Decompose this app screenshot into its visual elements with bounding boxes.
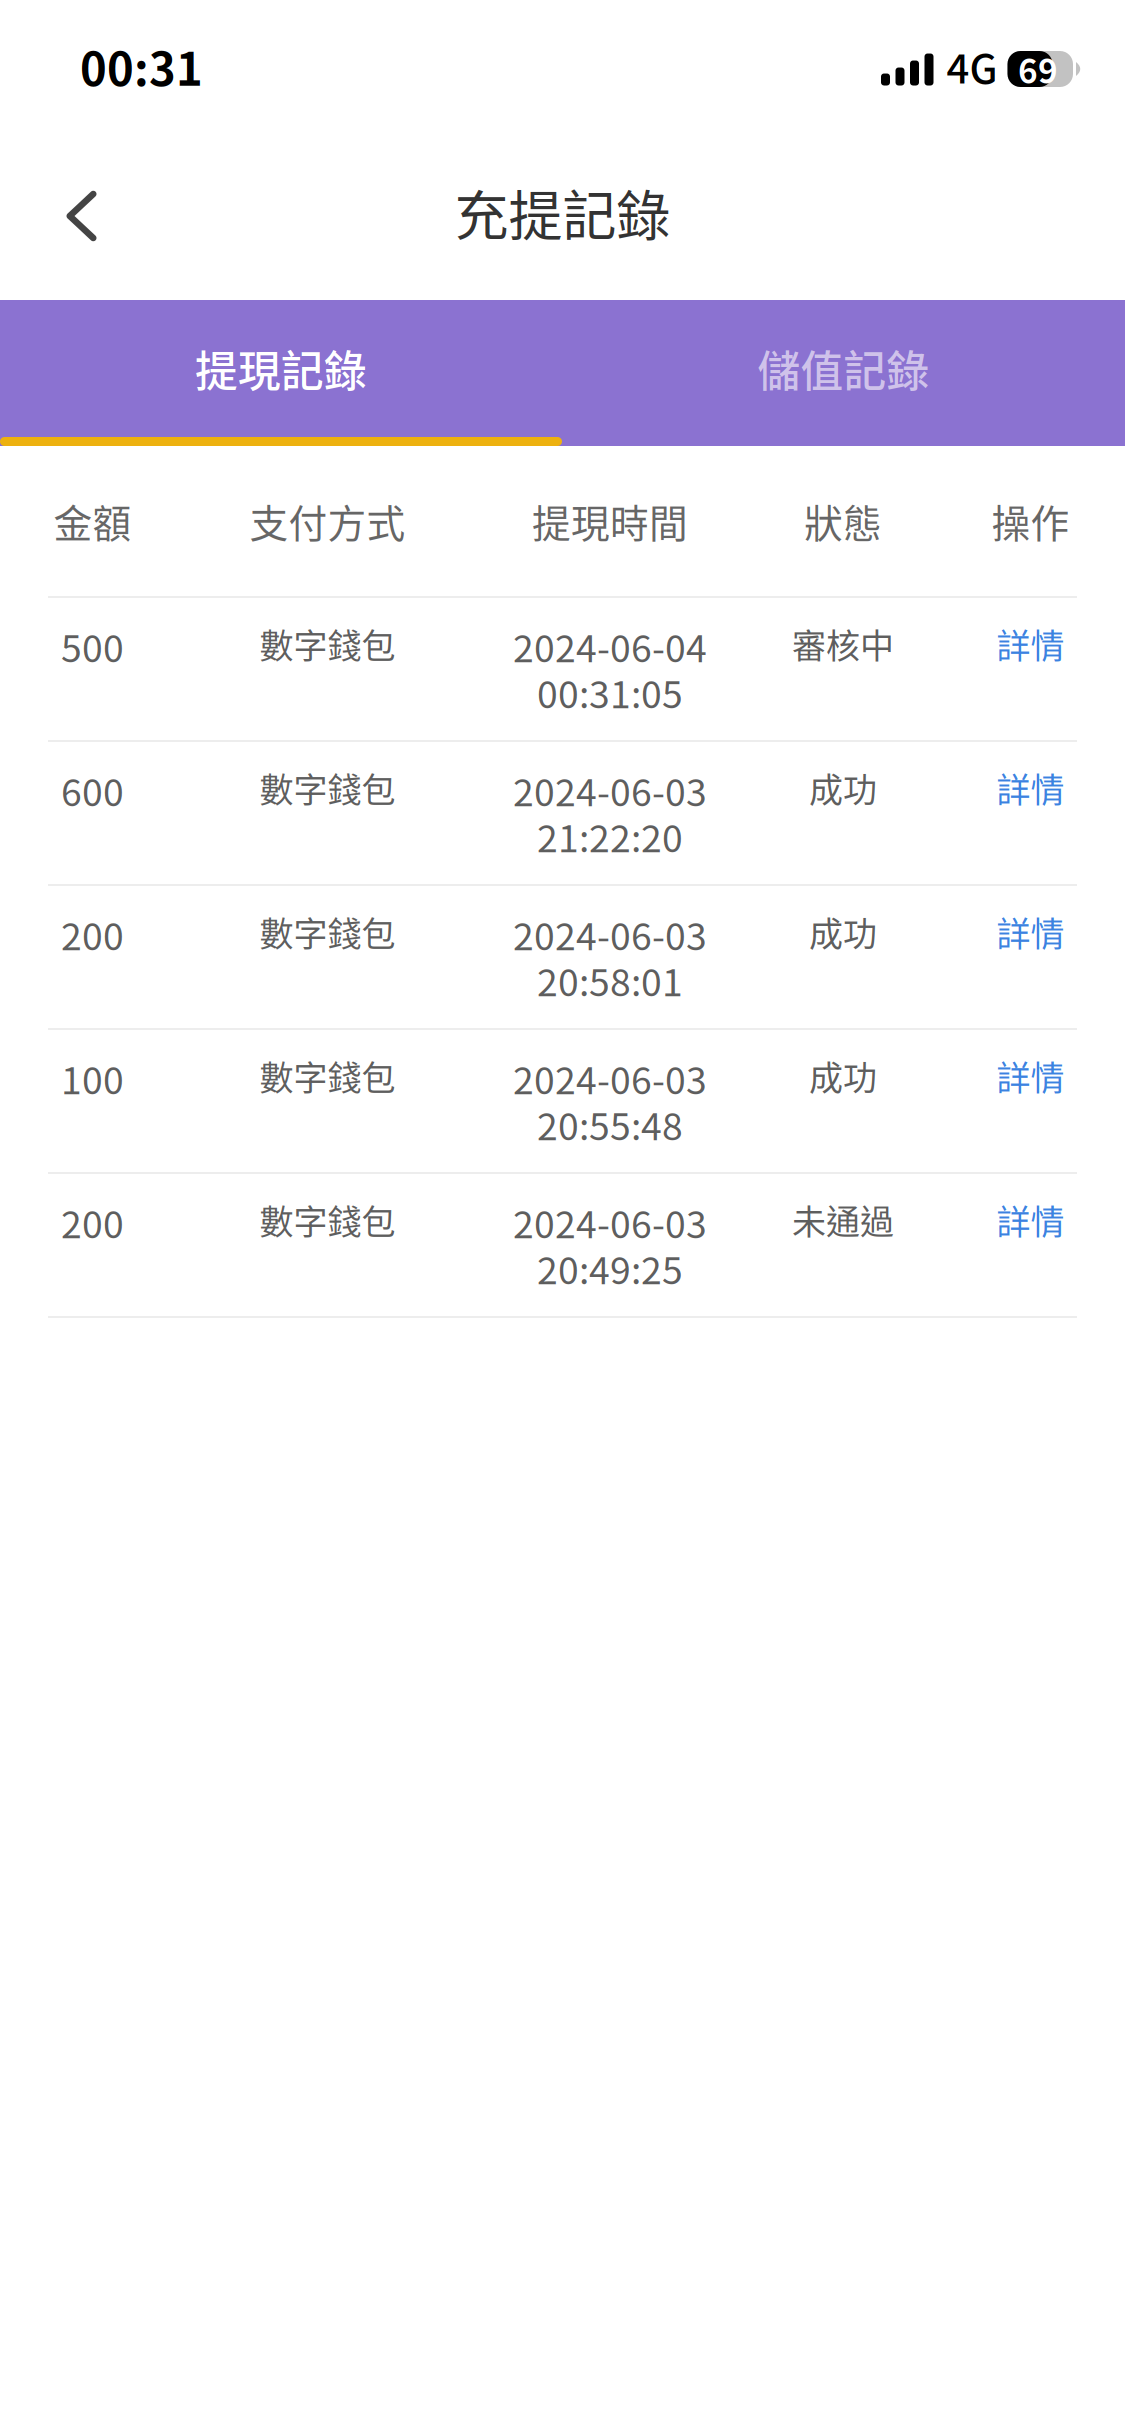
staticText: 成功 <box>809 763 877 812</box>
staticText: 成功 <box>809 1051 877 1100</box>
staticText: 20:58:01 <box>537 953 683 1007</box>
staticText: 狀態 <box>804 493 882 549</box>
staticText: 審核中 <box>792 619 894 668</box>
button[interactable]: Back <box>26 161 136 271</box>
staticText: 提現記錄 <box>195 338 367 399</box>
button[interactable]: 詳情 <box>936 619 1125 740</box>
staticText: 金額 <box>53 493 131 549</box>
button[interactable]: 儲值記錄 <box>562 300 1125 437</box>
staticText: 數字錢包 <box>259 1051 395 1100</box>
staticText: 4G <box>946 37 997 95</box>
button[interactable]: 詳情 <box>936 1195 1125 1316</box>
staticText: 20:55:48 <box>537 1097 683 1151</box>
staticText: 2024-06-04 <box>513 619 707 673</box>
button[interactable]: 詳情 <box>936 1051 1125 1172</box>
staticText: 充提記錄 <box>454 173 670 252</box>
staticText: 00:31 <box>80 33 203 99</box>
button[interactable]: 詳情 <box>936 907 1125 1028</box>
staticText: 詳情 <box>996 1195 1064 1244</box>
staticText: 500 <box>61 619 124 673</box>
staticText: 200 <box>61 1195 124 1249</box>
staticText: 600 <box>61 763 124 817</box>
staticText: 2024-06-03 <box>513 763 707 817</box>
staticText: 數字錢包 <box>259 619 395 668</box>
staticText: 儲值記錄 <box>757 338 929 399</box>
staticText: 詳情 <box>996 763 1064 812</box>
staticText: 2024-06-03 <box>513 1195 707 1249</box>
staticText: 數字錢包 <box>259 907 395 956</box>
staticText: 提現時間 <box>532 493 688 549</box>
staticText: 數字錢包 <box>259 763 395 812</box>
staticText: 2024-06-03 <box>513 1051 707 1105</box>
staticText: 未通過 <box>792 1195 894 1244</box>
staticText: 2024-06-03 <box>513 907 707 961</box>
staticText: 詳情 <box>996 907 1064 956</box>
staticText: 69 <box>1018 45 1058 93</box>
button[interactable]: 提現記錄 <box>0 300 562 437</box>
staticText: 操作 <box>991 493 1069 549</box>
staticText: 詳情 <box>996 619 1064 668</box>
staticText: 成功 <box>809 907 877 956</box>
staticText: 20:49:25 <box>537 1241 683 1295</box>
staticText: 數字錢包 <box>259 1195 395 1244</box>
staticText: 200 <box>61 907 124 961</box>
staticText: 支付方式 <box>249 493 405 549</box>
button[interactable]: 詳情 <box>936 763 1125 884</box>
staticText: 00:31:05 <box>537 665 683 719</box>
staticText: 詳情 <box>996 1051 1064 1100</box>
staticText: 21:22:20 <box>537 809 683 863</box>
staticText: 100 <box>61 1051 124 1105</box>
